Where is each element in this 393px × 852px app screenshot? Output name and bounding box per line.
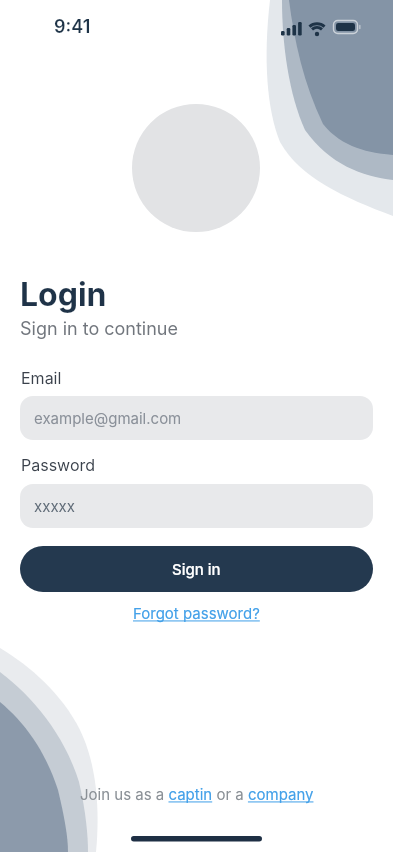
button[interactable]: Sign in: [20, 546, 373, 592]
staticText: example@gmail.com: [34, 409, 182, 427]
button[interactable]: Join us as a captin or a company: [80, 785, 314, 803]
staticText: 9:41: [54, 16, 91, 38]
staticText: Sign in: [172, 560, 221, 578]
button[interactable]: example@gmail.com: [20, 396, 373, 440]
staticText: Email: [21, 368, 62, 387]
staticText: Sign in to continue: [20, 318, 179, 340]
button[interactable]: Forgot password?: [133, 604, 260, 622]
button[interactable]: xxxxx: [20, 484, 373, 528]
staticText: Password: [21, 455, 96, 474]
staticText: Login: [20, 275, 107, 314]
staticText: xxxxx: [34, 497, 75, 515]
